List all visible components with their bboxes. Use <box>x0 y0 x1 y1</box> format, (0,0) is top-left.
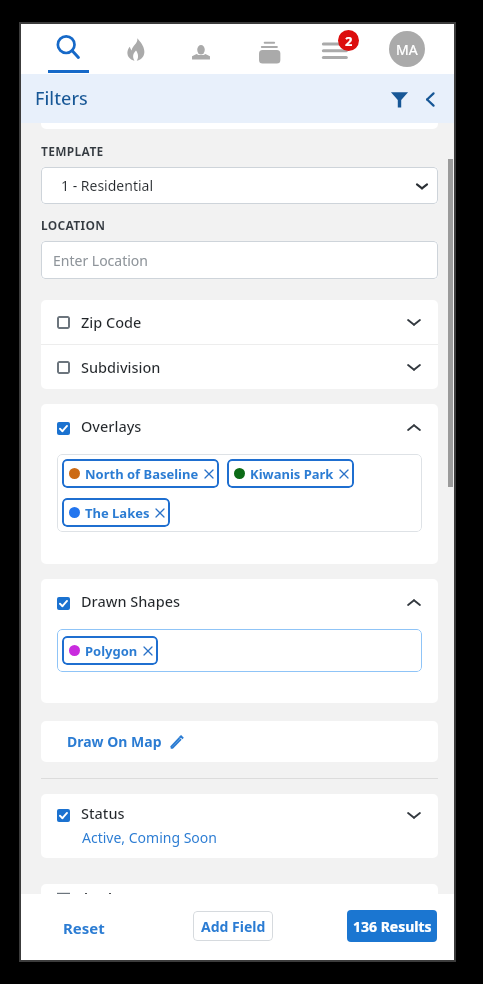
staticText: TEMPLATE <box>41 143 104 159</box>
button[interactable]: Add Field <box>193 911 273 941</box>
button[interactable]: Hot sheet <box>112 24 160 74</box>
button[interactable]: Profile <box>389 31 425 67</box>
button[interactable]: Saved searches <box>244 24 292 74</box>
staticText: 1 - Residential <box>61 176 154 195</box>
button[interactable]: Drawn Shapes <box>57 593 422 613</box>
button[interactable]: Draw On Map <box>41 721 438 762</box>
button[interactable]: Search <box>39 24 97 74</box>
button[interactable]: Reset <box>53 909 115 947</box>
staticText: 2 <box>345 32 353 50</box>
staticText: Draw On Map <box>67 732 162 751</box>
button[interactable]: 136 Results <box>347 910 437 942</box>
button[interactable]: Collapse panel <box>417 86 443 112</box>
staticText: LOCATION <box>41 217 106 233</box>
button[interactable]: Kiwanis Park <box>227 459 354 488</box>
staticText: Subdivision <box>81 357 161 377</box>
staticText: The Lakes <box>85 504 150 522</box>
staticText: MA <box>396 40 418 59</box>
button[interactable]: Status <box>57 805 422 825</box>
staticText: Filters <box>35 86 88 111</box>
staticText: Zip Code <box>81 312 142 332</box>
button[interactable]: Zip Code <box>41 300 438 344</box>
button[interactable]: North of Baseline <box>62 459 219 488</box>
staticText: Overlays <box>81 416 142 436</box>
button[interactable]: Filter options <box>384 84 414 114</box>
button[interactable]: Subdivision <box>41 345 438 389</box>
button[interactable]: Menu <box>310 24 358 74</box>
staticText: Reset <box>63 918 105 938</box>
button[interactable]: Overlays <box>57 418 422 438</box>
staticText: Active, Coming Soon <box>82 828 217 847</box>
button[interactable]: Polygon <box>62 636 158 665</box>
staticText: Add Field <box>201 917 266 936</box>
staticText: Status <box>81 803 125 823</box>
staticText: Drawn Shapes <box>81 591 181 611</box>
staticText: Kiwanis Park <box>250 465 334 483</box>
button[interactable]: Enter Location <box>41 241 438 279</box>
button[interactable]: The Lakes <box>62 498 170 527</box>
staticText: 136 Results <box>353 917 432 936</box>
staticText: Enter Location <box>53 251 148 270</box>
staticText: North of Baseline <box>85 465 199 483</box>
button[interactable]: 1 - Residential <box>41 167 438 204</box>
button[interactable]: Contacts <box>177 24 225 74</box>
staticText: Polygon <box>85 642 138 660</box>
